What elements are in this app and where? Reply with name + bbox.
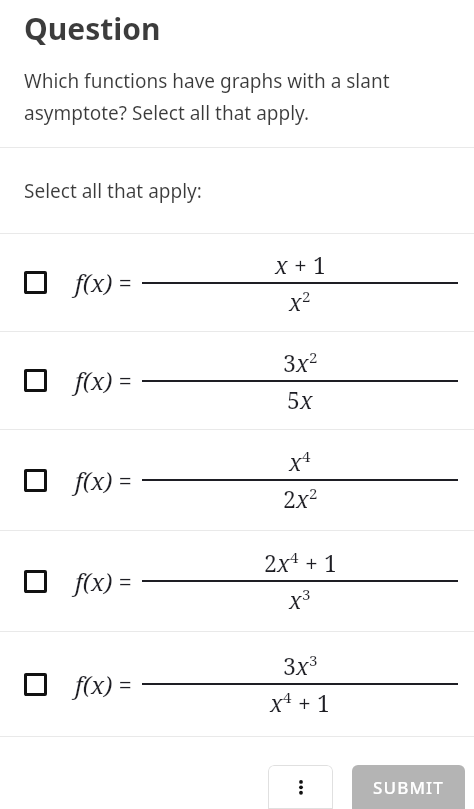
staticText: 1 — [313, 249, 326, 280]
staticText: 1 — [324, 547, 337, 578]
staticText: x — [296, 483, 309, 514]
staticText: 3 — [309, 650, 318, 671]
staticText: 1 — [317, 687, 330, 718]
staticText: f(x) = — [75, 668, 132, 701]
button[interactable]: f(x) = — [0, 430, 474, 530]
staticText: f(x) = — [75, 565, 132, 598]
staticText: f(x) = — [75, 464, 132, 497]
staticText: x — [270, 687, 283, 718]
staticText: Question — [24, 8, 161, 49]
button[interactable]: More options — [268, 765, 333, 809]
button[interactable]: SUBMIT — [352, 765, 465, 809]
staticText: x — [296, 347, 309, 378]
staticText: 2 — [309, 347, 318, 368]
staticText: 5 — [287, 384, 300, 415]
staticText: 4 — [283, 687, 292, 708]
staticText: x — [289, 286, 302, 317]
staticText: x — [289, 584, 302, 615]
staticText: + — [292, 687, 317, 718]
staticText: 2 — [264, 547, 277, 578]
staticText: + — [299, 547, 324, 578]
staticText: Select all that apply: — [24, 178, 202, 204]
staticText: f(x) = — [75, 364, 132, 397]
button[interactable]: f(x) = — [0, 332, 474, 429]
staticText: f(x) = — [75, 266, 132, 299]
button[interactable]: f(x) = — [0, 531, 474, 631]
staticText: x — [296, 650, 309, 681]
staticText: 3 — [283, 650, 296, 681]
staticText: 2 — [309, 483, 318, 504]
staticText: 3 — [283, 347, 296, 378]
staticText: x — [275, 249, 288, 280]
staticText: 4 — [290, 547, 299, 568]
staticText: x — [277, 547, 290, 578]
staticText: x — [300, 384, 313, 415]
staticText: 2 — [302, 286, 311, 307]
staticText: Which functions have graphs with a slant… — [24, 68, 454, 126]
staticText: 4 — [302, 446, 311, 467]
staticText: SUBMIT — [373, 776, 444, 799]
button[interactable]: f(x) = — [0, 632, 474, 736]
staticText: 3 — [302, 584, 311, 605]
staticText: 2 — [283, 483, 296, 514]
button[interactable]: f(x) = — [0, 234, 474, 331]
staticText: + — [288, 249, 313, 280]
staticText: x — [289, 446, 302, 477]
